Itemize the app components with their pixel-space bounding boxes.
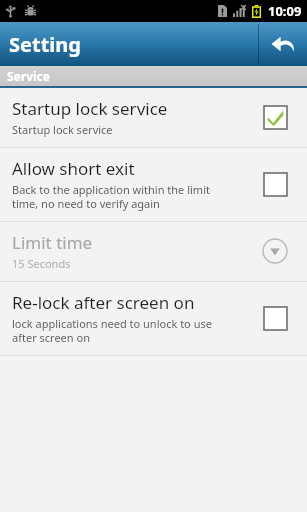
button[interactable]: Limit time bbox=[0, 222, 307, 281]
button[interactable]: Re-lock after screen on bbox=[0, 282, 307, 355]
staticText: Re-lock after screen on bbox=[12, 291, 195, 314]
staticText: Limit time bbox=[12, 231, 93, 254]
staticText: Startup lock service bbox=[12, 97, 168, 120]
staticText: Startup lock service bbox=[12, 122, 113, 137]
staticText: Service bbox=[7, 68, 50, 84]
staticText: Back to the application within the limit… bbox=[12, 182, 210, 211]
button[interactable]: Back bbox=[259, 22, 307, 66]
button[interactable]: Toggle Startup lock service bbox=[255, 97, 295, 137]
button[interactable]: Toggle Allow short exit bbox=[255, 164, 295, 204]
button[interactable]: Startup lock service bbox=[0, 88, 307, 147]
staticText: Setting bbox=[9, 31, 81, 58]
staticText: 10:09 bbox=[268, 2, 302, 20]
button[interactable]: Toggle Re-lock after screen on bbox=[255, 298, 295, 338]
staticText: Allow short exit bbox=[12, 157, 135, 180]
staticText: 15 Seconds bbox=[12, 256, 71, 271]
button[interactable]: Choose Limit time bbox=[255, 231, 295, 271]
staticText: lock applications need to unlock to use … bbox=[12, 316, 212, 345]
button[interactable]: Allow short exit bbox=[0, 148, 307, 221]
